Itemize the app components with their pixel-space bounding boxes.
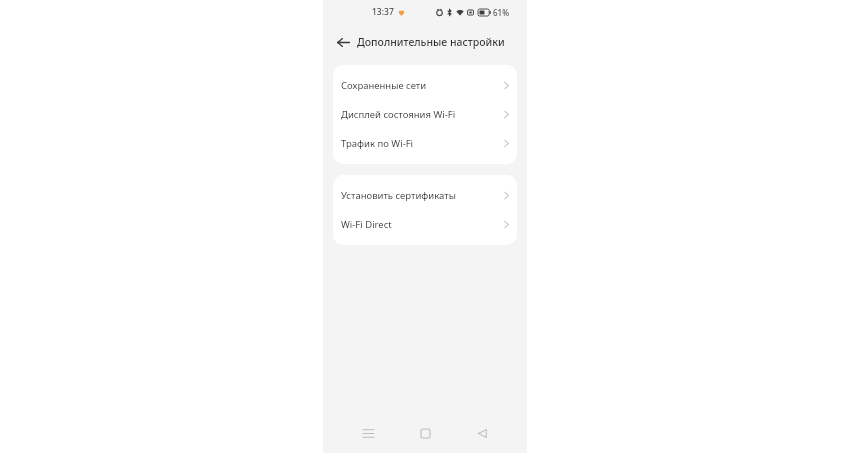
staticText: Дисплей состояния Wi-Fi <box>341 108 504 121</box>
staticText: Сохраненные сети <box>341 79 504 92</box>
staticText: Трафик по Wi-Fi <box>341 137 504 150</box>
button[interactable]: Дисплей состояния Wi-Fi <box>333 100 517 129</box>
staticText: Wi-Fi Direct <box>341 218 504 231</box>
button[interactable]: Недавние приложения <box>357 422 379 444</box>
button[interactable]: Трафик по Wi-Fi <box>333 129 517 158</box>
staticText: 61% <box>493 7 509 18</box>
button[interactable]: Установить сертификаты <box>333 181 517 210</box>
staticText: 13:37 <box>372 6 394 18</box>
staticText: Дополнительные настройки <box>357 35 505 49</box>
button[interactable]: Wi-Fi Direct <box>333 210 517 239</box>
button[interactable]: Главный экран <box>414 422 436 444</box>
button[interactable]: Сохраненные сети <box>333 71 517 100</box>
button[interactable]: Назад <box>471 422 493 444</box>
staticText: Установить сертификаты <box>341 189 504 202</box>
button[interactable]: Назад <box>332 31 354 53</box>
